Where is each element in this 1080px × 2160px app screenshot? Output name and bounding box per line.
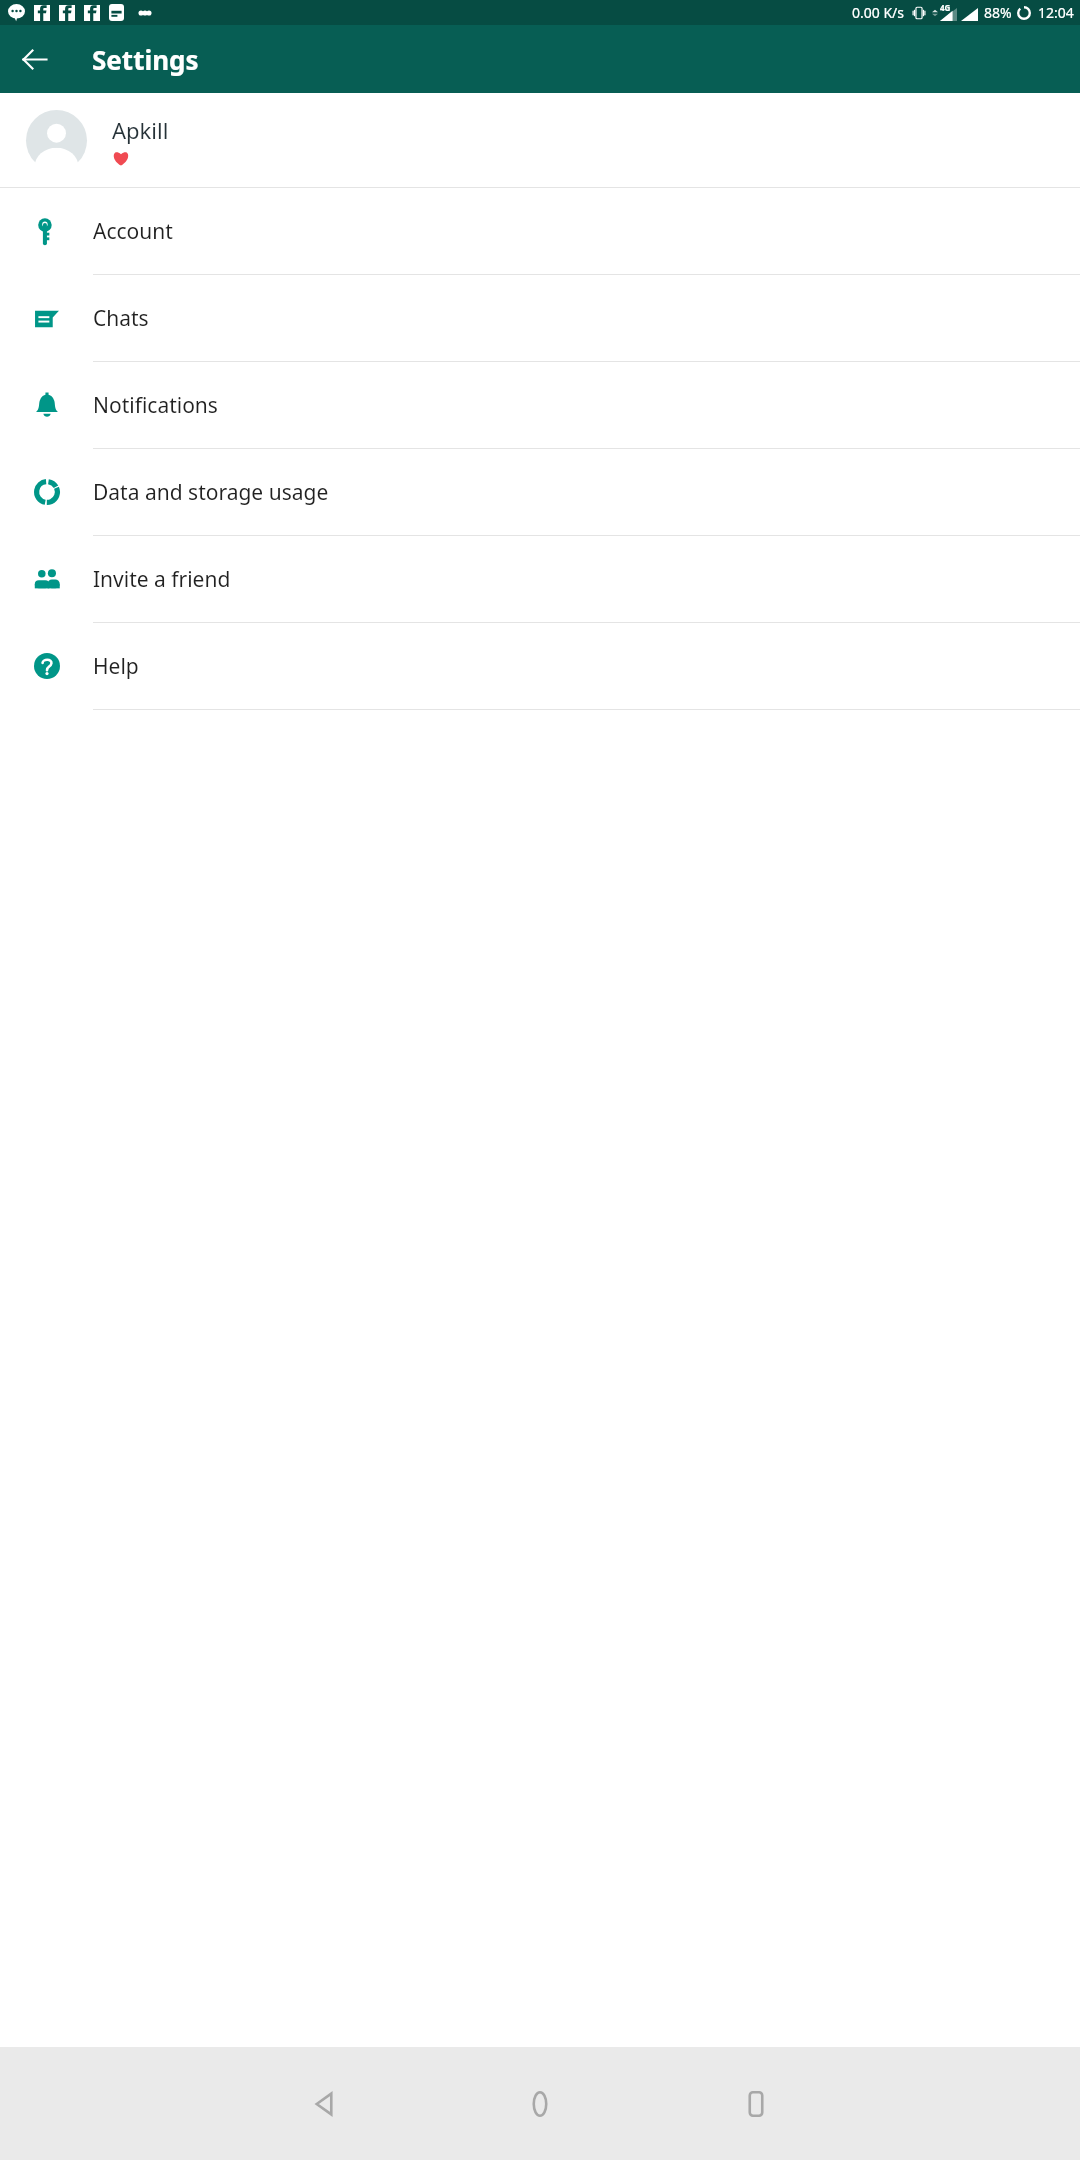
button[interactable]: Back bbox=[8, 33, 60, 85]
button[interactable]: Recents bbox=[648, 2047, 864, 2160]
button[interactable]: Data and storage usage bbox=[0, 449, 1080, 535]
button[interactable]: Apkill bbox=[0, 93, 1080, 187]
staticText: Invite a friend bbox=[93, 565, 231, 594]
staticText: Settings bbox=[92, 42, 199, 77]
staticText: Notifications bbox=[93, 391, 218, 420]
staticText: Help bbox=[93, 652, 139, 681]
staticText: Apkill bbox=[112, 115, 169, 145]
staticText: 0.00 K/s bbox=[852, 3, 904, 22]
button[interactable]: Invite a friend bbox=[0, 536, 1080, 622]
staticText: Account bbox=[93, 217, 173, 246]
staticText: 4G bbox=[940, 2, 951, 13]
staticText: Chats bbox=[93, 304, 149, 333]
button[interactable]: Account bbox=[0, 188, 1080, 274]
staticText: 12:04 bbox=[1038, 3, 1074, 22]
staticText: Data and storage usage bbox=[93, 478, 329, 507]
button[interactable]: Notifications bbox=[0, 362, 1080, 448]
button[interactable]: Chats bbox=[0, 275, 1080, 361]
button[interactable]: Help bbox=[0, 623, 1080, 709]
button[interactable]: Back bbox=[216, 2047, 432, 2160]
staticText: 88% bbox=[984, 3, 1012, 22]
button[interactable]: Home bbox=[432, 2047, 648, 2160]
